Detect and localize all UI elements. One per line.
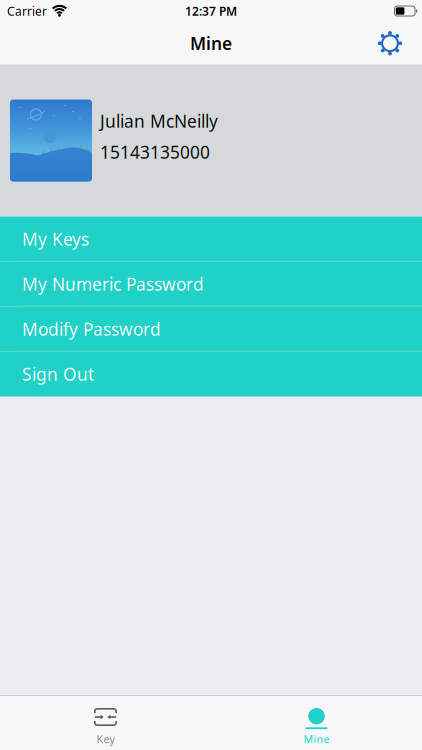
staticText: Julian McNeilly (100, 109, 218, 132)
button[interactable]: Settings (377, 30, 422, 56)
staticText: Mine (190, 32, 232, 55)
staticText: Mine (303, 732, 329, 746)
staticText: Carrier (7, 3, 47, 19)
staticText: Key (96, 732, 114, 746)
button[interactable]: My Numeric Password (0, 261, 422, 306)
staticText: 15143135000 (100, 140, 210, 163)
button[interactable]: Sign Out (0, 351, 422, 396)
staticText: My Keys (22, 227, 89, 250)
button[interactable]: Mine (211, 708, 422, 746)
staticText: Modify Password (22, 317, 161, 340)
staticText: 12:37 PM (185, 3, 237, 19)
button[interactable]: Key (0, 708, 211, 746)
button[interactable]: My Keys (0, 216, 422, 261)
button[interactable]: Modify Password (0, 306, 422, 351)
staticText: Sign Out (22, 362, 94, 385)
staticText: My Numeric Password (22, 272, 204, 295)
